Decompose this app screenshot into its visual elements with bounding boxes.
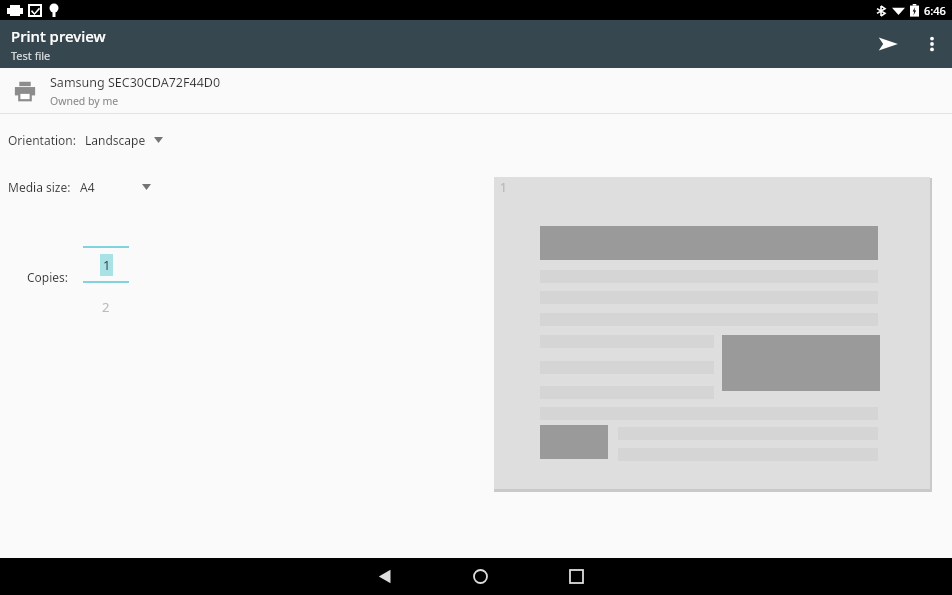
staticText: Owned by me [50, 94, 119, 108]
button[interactable]: Samsung SEC30CDA72F44D0 [0, 68, 952, 113]
button[interactable]: Orientation: [0, 127, 163, 153]
button[interactable]: Print [864, 20, 912, 68]
button[interactable]: More options [912, 24, 952, 64]
staticText: 1 [103, 256, 111, 274]
button[interactable]: 1 [83, 246, 129, 316]
button[interactable]: Back [360, 558, 408, 595]
staticText: Landscape [85, 132, 146, 148]
staticText: Media size: [8, 179, 71, 195]
staticText: 6:46 [924, 3, 946, 18]
button[interactable]: 1 [494, 177, 930, 489]
staticText: 1 [500, 179, 507, 195]
staticText: Copies: [27, 269, 69, 285]
staticText: A4 [80, 179, 95, 195]
button[interactable]: Home [456, 558, 504, 595]
staticText: Orientation: [8, 132, 76, 148]
staticText: Samsung SEC30CDA72F44D0 [50, 74, 221, 91]
staticText: Test file [11, 48, 51, 63]
button[interactable]: Media size: [0, 174, 151, 200]
button[interactable]: Recents [552, 558, 600, 595]
staticText: Print preview [11, 26, 106, 46]
staticText: 2 [102, 298, 110, 316]
